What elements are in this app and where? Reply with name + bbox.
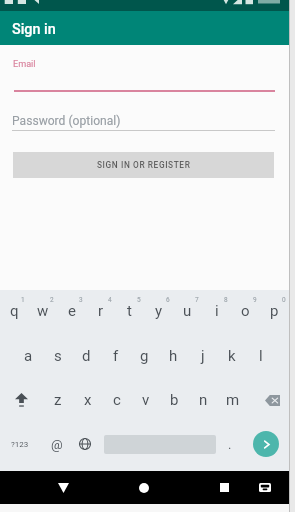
staticText: n (199, 391, 208, 409)
button[interactable]: d (72, 345, 101, 367)
staticText: u (183, 302, 192, 320)
staticText: z (54, 391, 62, 409)
staticText: w (37, 302, 49, 320)
staticText: l (259, 347, 263, 365)
button[interactable]: j (188, 345, 217, 367)
button[interactable]: Home (124, 471, 164, 504)
button[interactable]: b (160, 389, 189, 411)
staticText: h (169, 347, 178, 365)
button[interactable]: 8 (202, 294, 231, 320)
staticText: 3 (79, 296, 83, 304)
staticText: @ (51, 437, 63, 452)
button[interactable]: . (218, 431, 242, 457)
staticText: e (68, 302, 76, 320)
staticText: v (142, 391, 150, 409)
button[interactable]: v (131, 389, 160, 411)
staticText: f (113, 347, 119, 365)
staticText: a (24, 347, 33, 365)
button[interactable]: Switch keyboard (249, 471, 281, 504)
staticText: b (170, 391, 179, 409)
staticText: m (226, 391, 240, 409)
staticText: d (82, 347, 91, 365)
staticText: c (113, 391, 121, 409)
staticText: 8 (224, 296, 228, 304)
button[interactable]: 9 (231, 294, 260, 320)
button[interactable]: Back (43, 471, 83, 504)
staticText: o (241, 302, 250, 320)
staticText: s (54, 347, 62, 365)
staticText: p (270, 302, 279, 320)
button[interactable]: ?123 (2, 431, 37, 457)
button[interactable]: x (73, 389, 102, 411)
staticText: 0 (282, 296, 286, 304)
button[interactable]: 6 (144, 294, 173, 320)
staticText: q (10, 302, 19, 320)
button[interactable]: Change language (71, 431, 99, 457)
staticText: t (127, 302, 132, 320)
button[interactable]: f (101, 345, 130, 367)
button[interactable]: 2 (28, 294, 57, 320)
staticText: i (215, 302, 219, 320)
button[interactable]: h (159, 345, 188, 367)
staticText: g (140, 347, 149, 365)
staticText: . (228, 437, 232, 452)
button[interactable]: k (217, 345, 246, 367)
staticText: 9 (253, 296, 257, 304)
button[interactable]: Shift (0, 389, 43, 411)
button[interactable]: l (246, 345, 275, 367)
button[interactable]: Go (253, 431, 279, 457)
staticText: Sign in (12, 21, 56, 38)
button[interactable]: a (14, 345, 43, 367)
button[interactable]: n (189, 389, 218, 411)
button[interactable]: Recent apps (204, 471, 244, 504)
button[interactable]: SIGN IN OR REGISTER (13, 152, 274, 178)
staticText: Password (optional) (12, 114, 121, 128)
staticText: k (228, 347, 236, 365)
staticText: r (98, 302, 104, 320)
staticText: 2 (50, 296, 54, 304)
button[interactable]: z (43, 389, 73, 411)
button[interactable]: Backspace (247, 389, 289, 411)
staticText: 4 (108, 296, 112, 304)
button[interactable]: @ (42, 431, 72, 457)
staticText: j (201, 347, 205, 365)
staticText: 1 (21, 296, 25, 304)
button[interactable]: s (43, 345, 72, 367)
staticText: 7 (195, 296, 199, 304)
staticText: y (155, 302, 163, 320)
button[interactable]: 5 (115, 294, 144, 320)
button[interactable]: m (218, 389, 247, 411)
staticText: x (84, 391, 92, 409)
button[interactable]: 1 (0, 294, 28, 320)
staticText: ?123 (11, 440, 29, 449)
button[interactable]: c (102, 389, 131, 411)
staticText: Email (13, 59, 36, 70)
button[interactable]: 4 (86, 294, 115, 320)
staticText: 5 (137, 296, 141, 304)
button[interactable]: 7 (173, 294, 202, 320)
staticText: 6 (166, 296, 170, 304)
button[interactable]: 3 (57, 294, 86, 320)
staticText: SIGN IN OR REGISTER (97, 160, 191, 170)
button[interactable]: g (130, 345, 159, 367)
button[interactable]: 0 (260, 294, 289, 320)
